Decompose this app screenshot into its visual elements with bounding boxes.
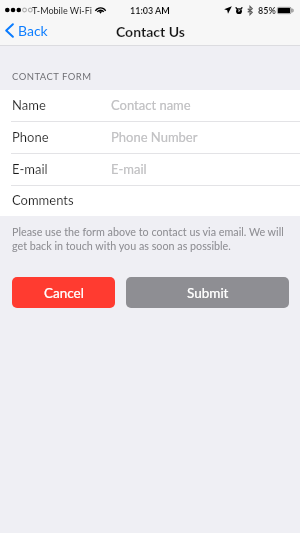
button[interactable]: Submit [126, 277, 289, 308]
button[interactable]: Phone [0, 122, 300, 154]
staticText: Phone [12, 129, 49, 145]
button[interactable]: Name [0, 90, 300, 122]
staticText: Phone Number [111, 129, 198, 145]
staticText: CONTACT FORM [12, 71, 92, 82]
button[interactable]: Cancel [12, 277, 115, 308]
button[interactable]: E-mail [0, 154, 300, 186]
staticText: Contact Us [116, 23, 185, 40]
button[interactable]: Comments [0, 186, 300, 216]
staticText: 85% [258, 5, 276, 16]
staticText: E-mail [12, 161, 48, 177]
staticText: E-mail [111, 161, 147, 177]
staticText: Submit [187, 285, 229, 301]
staticText: 11:03 AM [130, 5, 170, 16]
button[interactable]: Back [3, 20, 50, 41]
staticText: Comments [12, 192, 74, 208]
staticText: Name [12, 97, 46, 113]
staticText: Cancel [44, 285, 84, 301]
other: Back [5, 23, 14, 38]
staticText: T-Mobile Wi-Fi [32, 5, 92, 16]
staticText: Back [18, 22, 48, 39]
staticText: Contact name [111, 97, 191, 113]
staticText: Please use the form above to contact us … [12, 225, 288, 252]
